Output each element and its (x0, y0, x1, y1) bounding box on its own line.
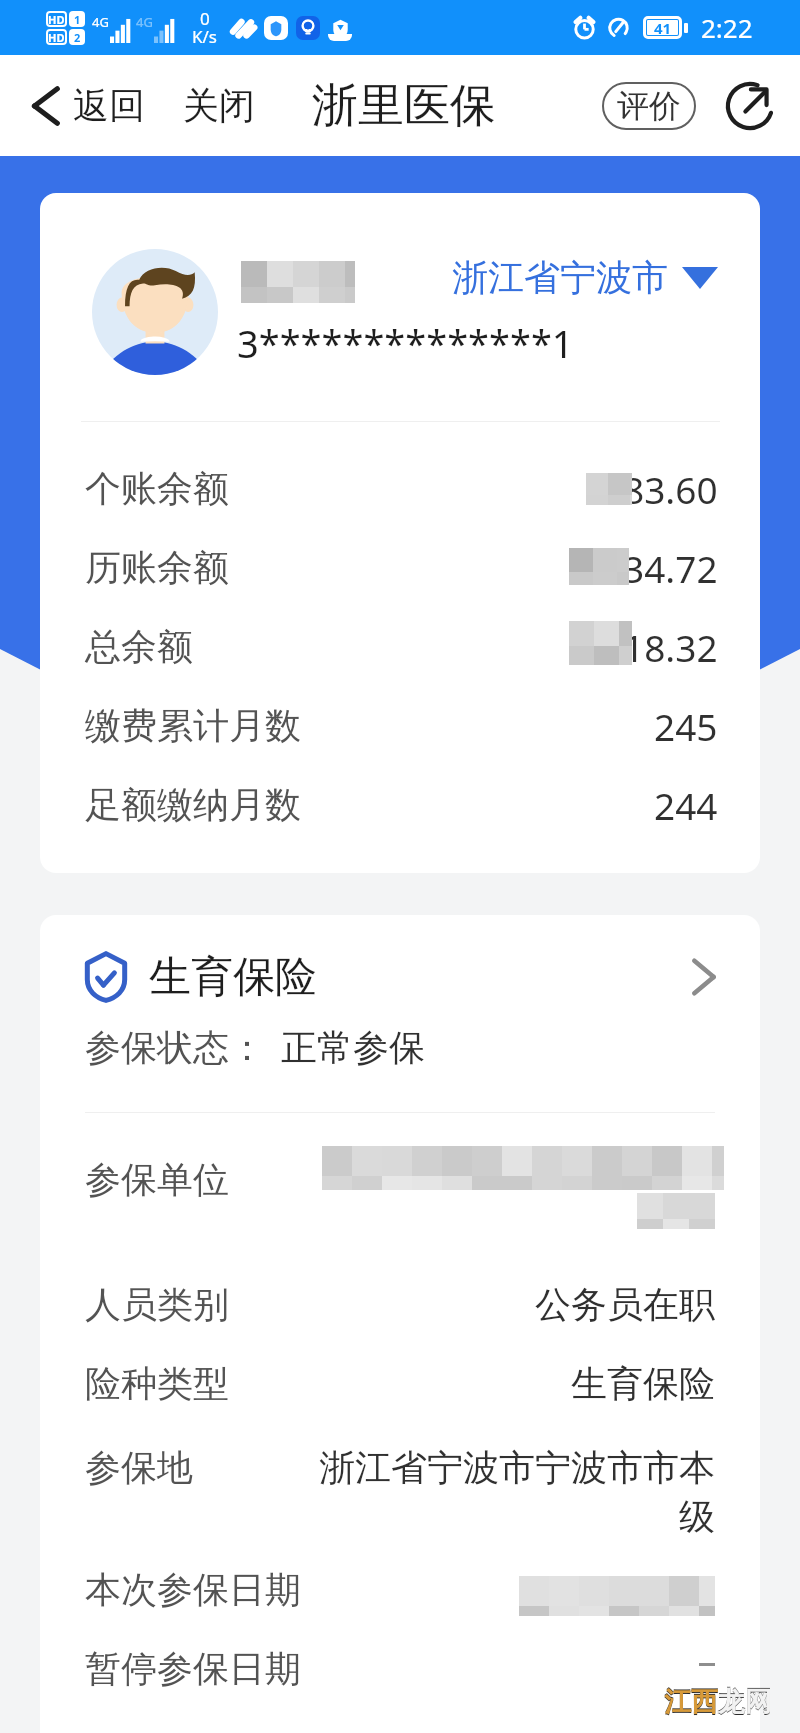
staticText: 正常参保 (281, 1025, 425, 1069)
button[interactable]: 浙江省宁波市 (452, 255, 718, 300)
staticText: 生育保险 (149, 951, 317, 1004)
staticText: 江西龙网 (664, 1684, 772, 1718)
staticText: 缴费累计月数 (85, 703, 301, 748)
staticText: 0 (200, 7, 210, 30)
staticText: 暂停参保日期 (85, 1646, 301, 1691)
button[interactable]: 返回 (26, 55, 145, 156)
staticText: 江西龙网 (664, 1686, 772, 1720)
staticText: 245 (654, 701, 718, 751)
staticText: 83.60 (623, 464, 718, 514)
staticText: 历账余额 (85, 545, 229, 590)
button[interactable]: 评价 (602, 82, 696, 130)
staticText: 公务员在职 (535, 1282, 715, 1327)
staticText: HD (48, 12, 65, 27)
staticText: 返回 (73, 83, 145, 128)
staticText: 浙江省宁波市 (452, 255, 668, 300)
button[interactable]: Share (726, 82, 774, 130)
staticText: 4G (136, 13, 153, 31)
staticText: 总余额 (85, 624, 193, 669)
staticText: 江西 (664, 1685, 718, 1719)
staticText: 参保状态： (85, 1025, 265, 1069)
staticText: 龙网 (718, 1685, 772, 1719)
staticText: 生育保险 (571, 1361, 715, 1406)
staticText: 18.32 (623, 622, 718, 672)
staticText: K/s (192, 25, 217, 48)
staticText: 本次参保日期 (85, 1567, 301, 1612)
staticText: 2 (74, 30, 81, 45)
staticText: 34.72 (623, 543, 718, 593)
staticText: 4G (92, 13, 109, 31)
staticText: 244 (654, 780, 718, 830)
staticText: 险种类型 (85, 1361, 229, 1406)
staticText: 参保地 (85, 1445, 193, 1490)
staticText: 1 (74, 12, 81, 27)
staticText: 41 (654, 18, 672, 38)
staticText: 参保单位 (85, 1157, 229, 1202)
staticText: 足额缴纳月数 (85, 782, 301, 827)
staticText: 人员类别 (85, 1282, 229, 1327)
staticText: 个账余额 (85, 466, 229, 511)
staticText: 浙江省宁波市宁波市市本级 (317, 1445, 715, 1540)
staticText: 浙里医保 (312, 77, 496, 135)
staticText: 3**************1 (237, 317, 574, 369)
button[interactable]: 关闭 (163, 55, 275, 156)
staticText: 关闭 (183, 83, 255, 128)
button[interactable]: 生育保险 (40, 927, 760, 1027)
staticText: HD (48, 30, 65, 45)
staticText: 评价 (617, 86, 681, 126)
staticText: 2:22 (701, 10, 753, 45)
